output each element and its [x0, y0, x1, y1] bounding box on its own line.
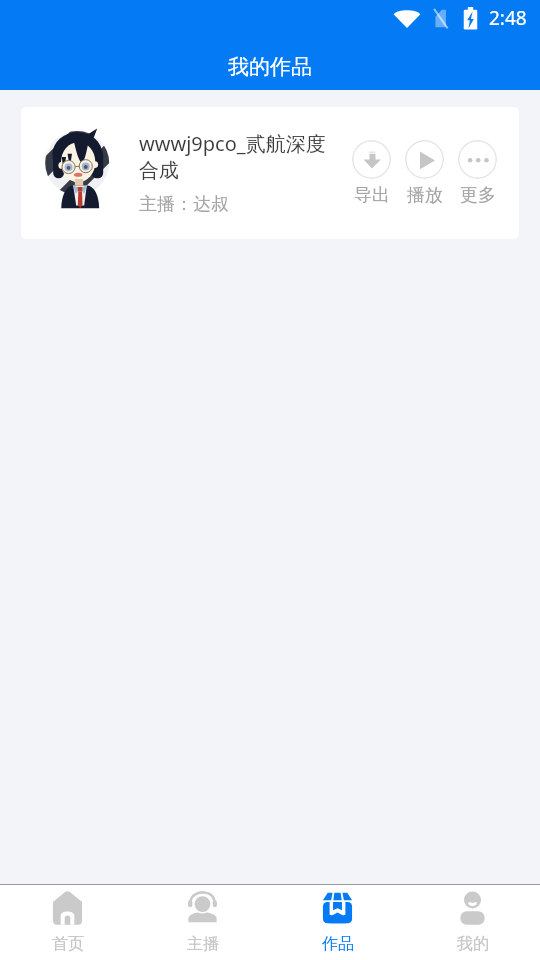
staticText: 主播：达叔 — [139, 193, 229, 216]
button[interactable]: 主播 — [135, 885, 270, 960]
button[interactable]: 更多 — [458, 140, 497, 207]
button[interactable]: 导出 — [352, 140, 391, 207]
staticText: 播放 — [407, 184, 443, 207]
staticText: wwwj9pco_贰航深度合成 — [139, 130, 339, 183]
staticText: 2:48 — [489, 5, 527, 31]
staticText: 更多 — [460, 184, 496, 207]
staticText: 我的 — [457, 934, 489, 954]
staticText: 主播 — [187, 934, 219, 954]
staticText: 首页 — [52, 934, 84, 954]
button[interactable]: 作品 — [270, 885, 405, 960]
staticText: 导出 — [354, 184, 390, 207]
staticText: 作品 — [322, 934, 354, 954]
button[interactable]: 我的 — [405, 885, 540, 960]
staticText: 我的作品 — [228, 54, 312, 80]
button[interactable]: 播放 — [405, 140, 444, 207]
button[interactable]: 首页 — [0, 885, 135, 960]
button[interactable]: wwwj9pco_贰航深度合成，主播：达叔 — [21, 107, 519, 239]
